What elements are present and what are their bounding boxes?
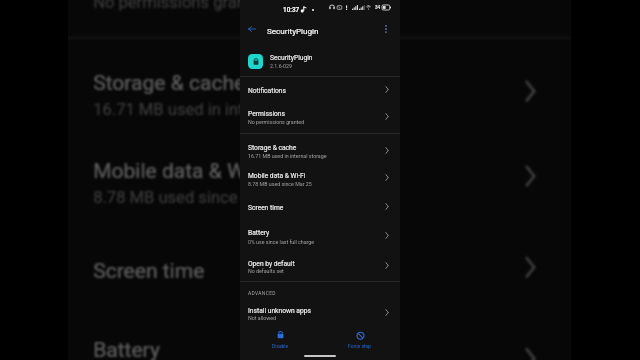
staticText: 8.78 MB used since Mar 25 xyxy=(93,187,294,206)
staticText: Permissions xyxy=(248,110,285,118)
staticText: Mobile data & Wi-Fi xyxy=(248,172,306,180)
staticText: Mobile data & Wi-Fi xyxy=(93,159,276,184)
staticText: Not allowed xyxy=(248,315,276,321)
button[interactable] xyxy=(68,322,571,360)
staticText: ADVANCED xyxy=(248,290,276,296)
staticText: SecurityPlugin xyxy=(267,26,319,35)
button[interactable]: More options xyxy=(379,22,393,36)
button[interactable] xyxy=(240,255,400,279)
staticText: 16.71 MB used in internal storage xyxy=(93,99,342,118)
button[interactable]: Disable xyxy=(250,327,310,351)
staticText: 8.78 MB used since Mar 25 xyxy=(248,181,312,187)
staticText: 34 xyxy=(375,5,381,10)
staticText: 0% use since last full charge xyxy=(248,239,315,245)
button[interactable] xyxy=(68,143,571,219)
button[interactable] xyxy=(240,139,400,163)
button[interactable] xyxy=(68,0,571,24)
staticText: Open by default xyxy=(248,260,295,268)
staticText: Storage & cache xyxy=(93,71,247,96)
staticText: No permissions granted xyxy=(93,0,272,11)
button[interactable] xyxy=(240,224,400,248)
staticText: 2.1.6-029 xyxy=(270,63,292,69)
button[interactable] xyxy=(240,82,400,100)
staticText: No defaults set xyxy=(248,268,284,274)
staticText: Battery xyxy=(93,338,162,360)
button[interactable] xyxy=(68,244,571,300)
staticText: Force stop xyxy=(348,343,372,349)
button[interactable]: Force stop xyxy=(330,327,390,351)
staticText: Screen time xyxy=(248,204,284,212)
staticText: Screen time xyxy=(93,259,206,285)
staticText: Install unknown apps xyxy=(248,307,311,315)
button[interactable] xyxy=(240,199,400,217)
staticText: Disable xyxy=(272,343,289,349)
button[interactable] xyxy=(240,167,400,191)
button[interactable] xyxy=(68,55,571,130)
button[interactable]: SecurityPlugin xyxy=(240,50,400,72)
button[interactable] xyxy=(240,105,400,129)
staticText: Notifications xyxy=(248,87,287,95)
staticText: No permissions granted xyxy=(248,119,305,125)
staticText: 10:37 xyxy=(283,6,300,14)
staticText: SecurityPlugin xyxy=(270,54,313,62)
staticText: 16.71 MB used in internal storage xyxy=(248,153,327,159)
staticText: Storage & cache xyxy=(248,144,297,152)
button[interactable] xyxy=(240,302,400,326)
staticText: Battery xyxy=(248,229,270,237)
button[interactable]: Back xyxy=(245,22,259,36)
